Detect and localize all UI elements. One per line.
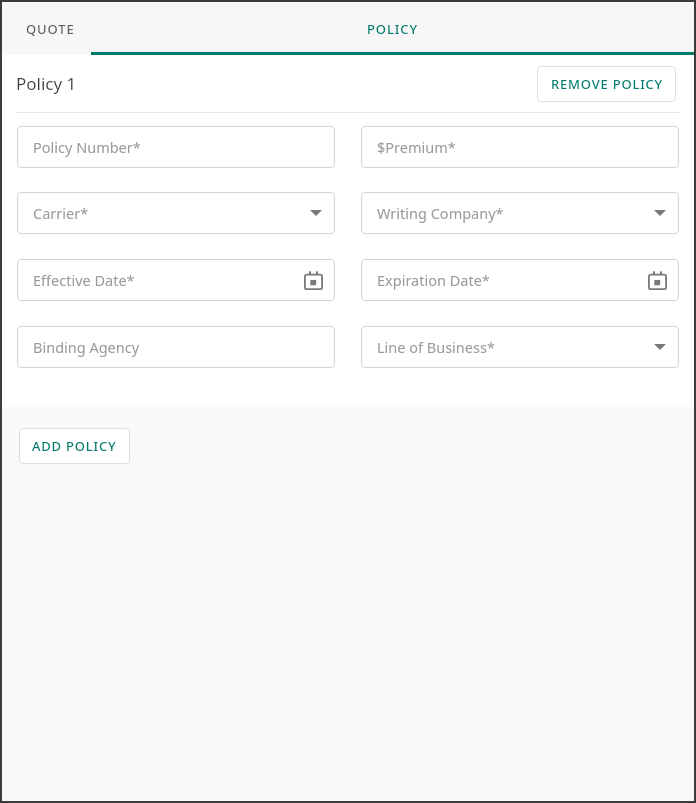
- staticText: Effective Date*: [33, 270, 135, 290]
- button[interactable]: Writing Company*: [361, 192, 679, 234]
- button[interactable]: Line of Business*: [361, 326, 679, 368]
- staticText: QUOTE: [26, 20, 75, 38]
- button[interactable]: QUOTE: [10, 2, 91, 55]
- other: Pick date: [648, 271, 667, 290]
- staticText: Writing Company*: [377, 203, 504, 223]
- button[interactable]: REMOVE POLICY: [537, 66, 676, 102]
- staticText: Line of Business*: [377, 337, 495, 357]
- button[interactable]: POLICY: [91, 2, 694, 55]
- staticText: POLICY: [367, 20, 418, 38]
- button[interactable]: Effective Date*: [17, 259, 335, 301]
- staticText: Expiration Date*: [377, 270, 490, 290]
- other: Open dropdown: [654, 209, 666, 217]
- staticText: ADD POLICY: [32, 437, 117, 455]
- staticText: Policy 1: [16, 72, 77, 95]
- button[interactable]: Carrier*: [17, 192, 335, 234]
- staticText: Carrier*: [33, 203, 89, 223]
- button[interactable]: Binding Agency: [17, 326, 335, 368]
- staticText: $Premium*: [377, 137, 456, 157]
- button[interactable]: ADD POLICY: [19, 428, 130, 464]
- other: Open dropdown: [654, 343, 666, 351]
- button[interactable]: $Premium*: [361, 126, 679, 168]
- other: Open dropdown: [310, 209, 322, 217]
- staticText: REMOVE POLICY: [551, 75, 663, 93]
- staticText: Binding Agency: [33, 337, 140, 357]
- button[interactable]: Policy Number*: [17, 126, 335, 168]
- other: Pick date: [304, 271, 323, 290]
- staticText: Policy Number*: [33, 137, 141, 157]
- button[interactable]: Expiration Date*: [361, 259, 679, 301]
